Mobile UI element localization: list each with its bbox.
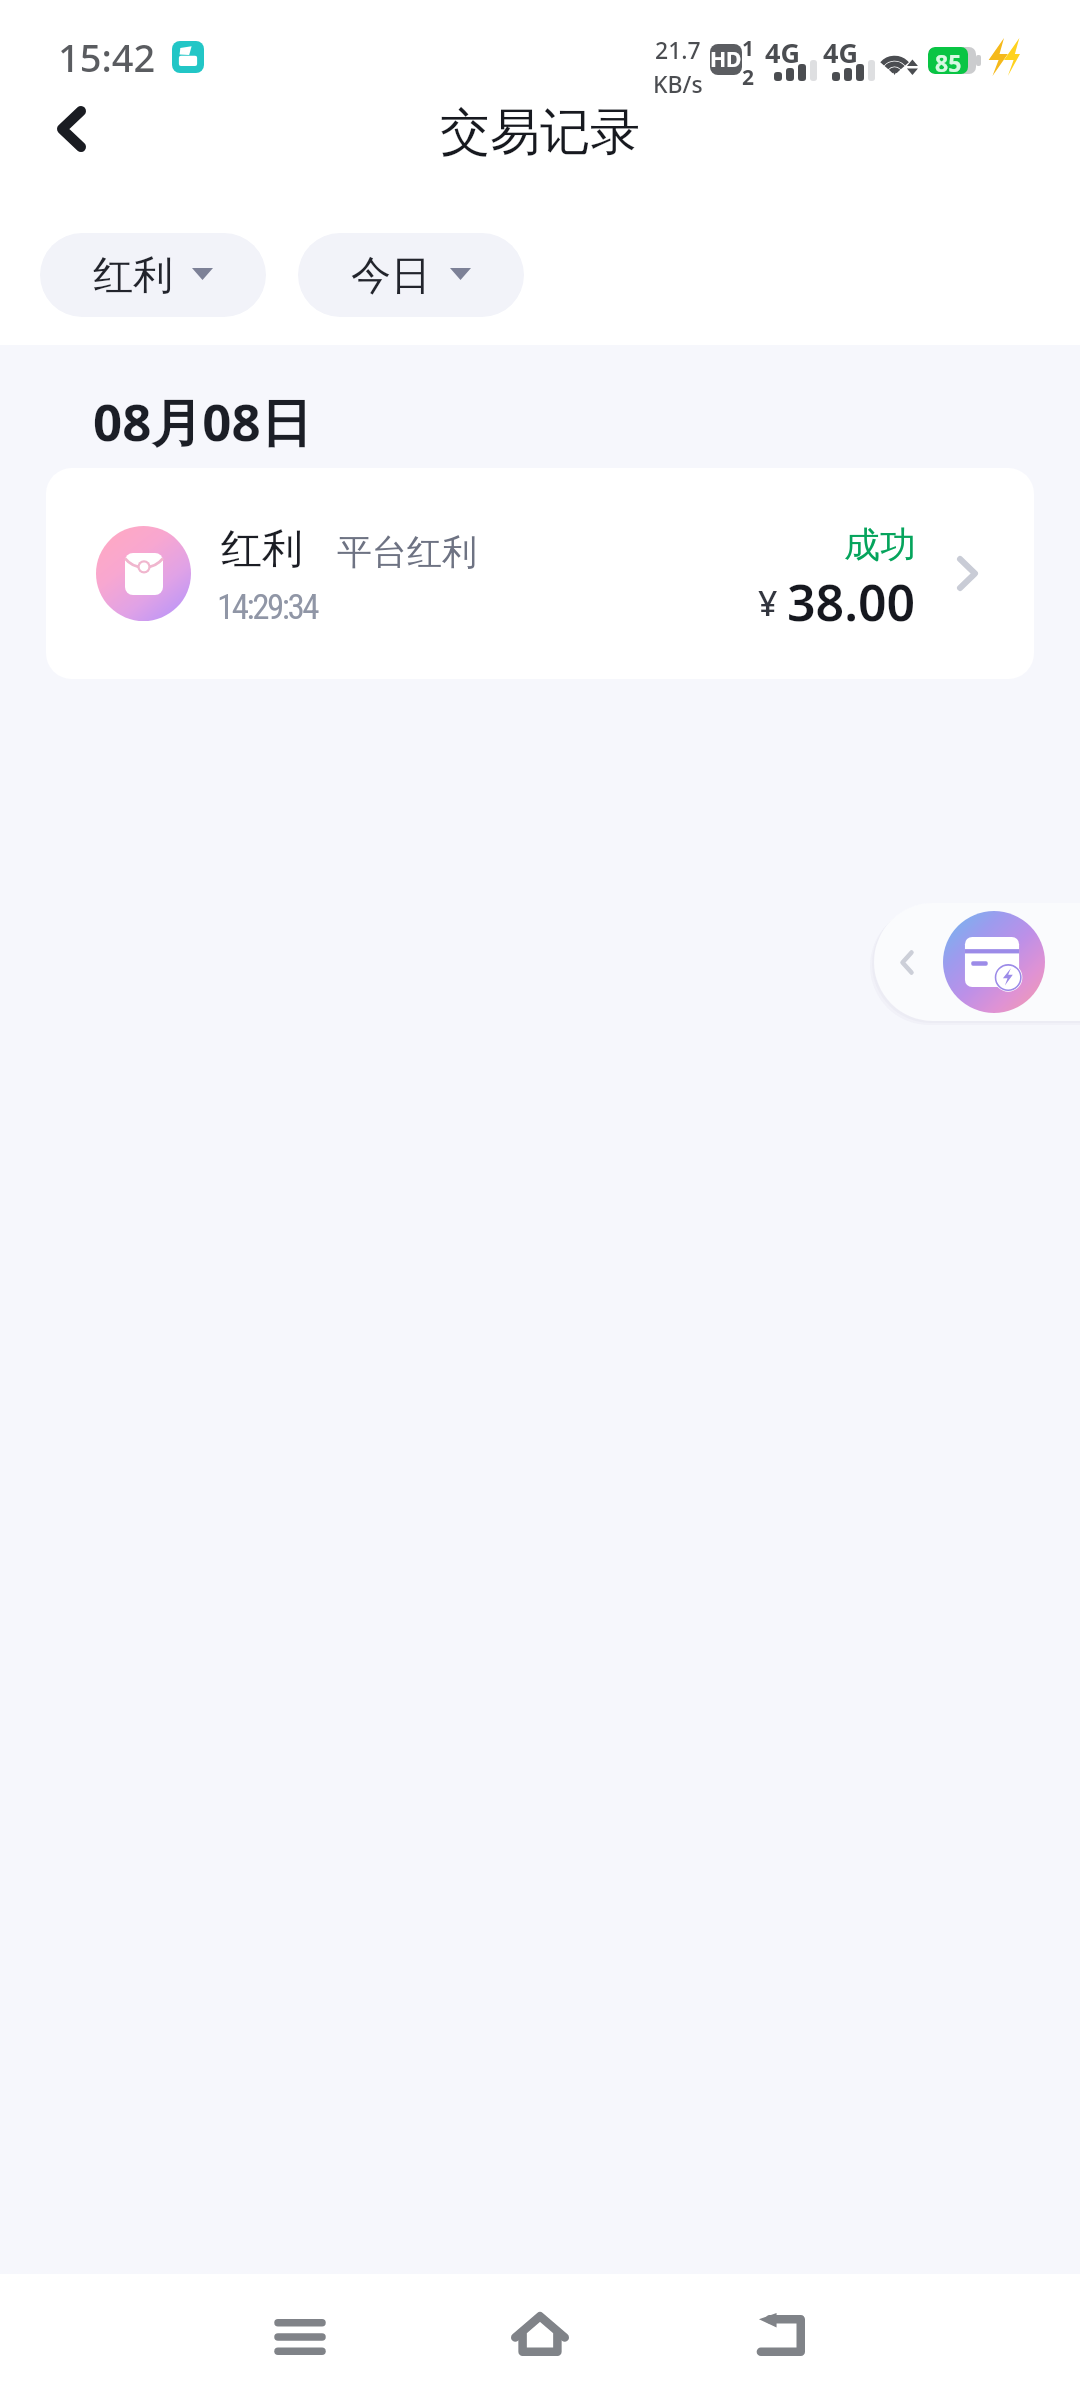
staticText: 21.7: [655, 34, 701, 65]
staticText: 红利: [221, 524, 303, 576]
staticText: 4G: [765, 34, 800, 71]
staticText: 14:29:34: [217, 587, 318, 628]
staticText: 交易记录: [440, 101, 640, 164]
staticText: ¥: [758, 580, 778, 626]
staticText: 4G: [823, 34, 858, 71]
staticText: 08月08日: [93, 386, 312, 456]
staticText: 今日: [351, 250, 431, 300]
staticText: KB/s: [653, 68, 703, 99]
button[interactable]: 红利: [40, 233, 266, 317]
button[interactable]: Back: [720, 2274, 840, 2394]
button[interactable]: 今日: [298, 233, 524, 317]
button[interactable]: Home: [480, 2274, 600, 2394]
staticText: 2: [742, 63, 755, 92]
button[interactable]: 红利: [46, 468, 1034, 679]
staticText: 成功: [844, 522, 916, 567]
button[interactable]: Back: [26, 87, 116, 177]
staticText: 1: [742, 34, 755, 63]
staticText: 15:42: [58, 31, 156, 83]
staticText: 红利: [93, 250, 173, 300]
staticText: 平台红利: [337, 530, 477, 574]
staticText: 85: [935, 47, 962, 74]
staticText: HD: [710, 45, 742, 74]
button[interactable]: Recents: [240, 2274, 360, 2394]
button[interactable]: Quick pay: [874, 903, 1080, 1021]
staticText: 38.00: [787, 568, 916, 636]
